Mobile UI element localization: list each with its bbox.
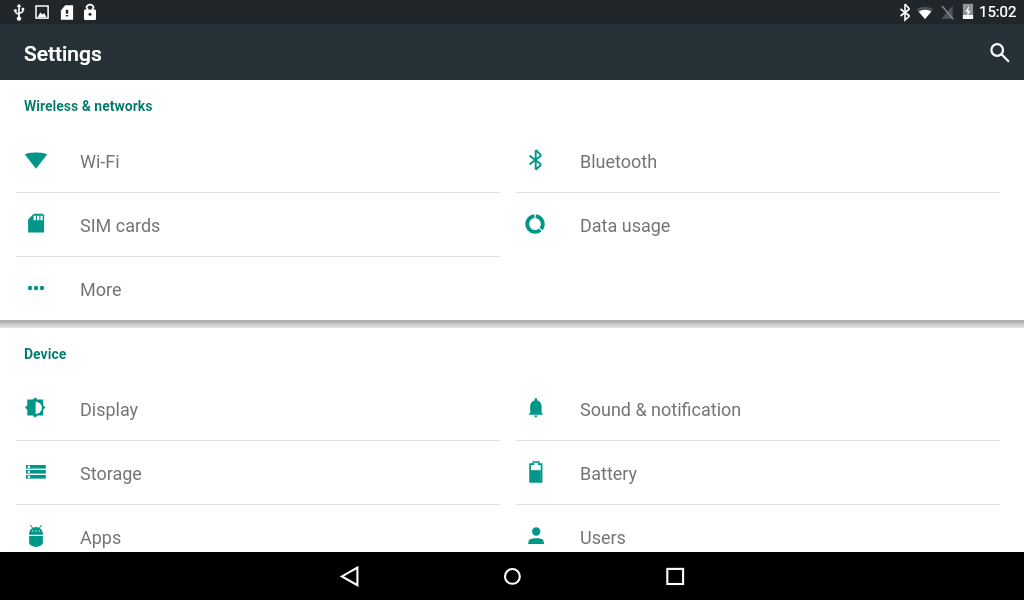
button[interactable]: Wi-Fi (0, 128, 512, 192)
button[interactable]: Battery (512, 440, 1024, 504)
staticText: SIM cards (80, 215, 161, 236)
button[interactable]: Storage (0, 440, 512, 504)
staticText: Bluetooth (580, 151, 658, 172)
staticText: Wireless & networks (24, 98, 153, 114)
button[interactable]: Display (0, 376, 512, 440)
button[interactable]: Recent apps (650, 552, 698, 600)
staticText: Sound & notification (580, 399, 742, 420)
button[interactable]: SIM cards (0, 192, 512, 256)
button[interactable]: Back (326, 552, 374, 600)
staticText: Display (80, 399, 139, 420)
button[interactable]: Data usage (512, 192, 1024, 256)
staticText: More (80, 279, 122, 300)
button[interactable]: Bluetooth (512, 128, 1024, 192)
button[interactable]: Sound & notification (512, 376, 1024, 440)
staticText: Users (580, 527, 626, 548)
staticText: Settings (24, 42, 102, 67)
staticText: 15:02 (979, 3, 1017, 21)
staticText: Wi-Fi (80, 151, 120, 172)
staticText: Device (24, 346, 67, 362)
button[interactable]: Apps (0, 504, 512, 552)
button[interactable]: Users (512, 504, 1024, 552)
staticText: Battery (580, 463, 638, 484)
staticText: Data usage (580, 215, 671, 236)
staticText: Apps (80, 527, 122, 548)
button[interactable]: Search (968, 24, 1024, 80)
button[interactable]: Home (488, 552, 536, 600)
button[interactable]: More (0, 256, 512, 320)
staticText: Storage (80, 463, 142, 484)
